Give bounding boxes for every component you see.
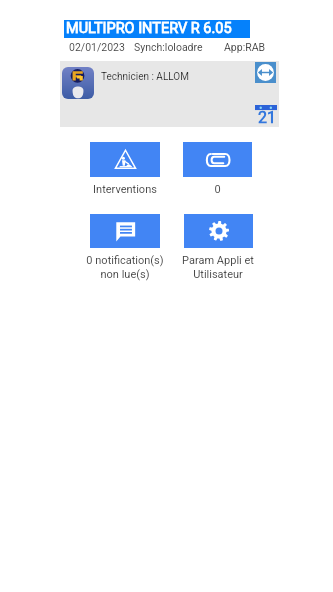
button[interactable]: 0 notification(s) non lue(s)	[86, 214, 164, 280]
staticText: Synch:loloadre	[134, 41, 203, 53]
staticText: 02/01/2023	[69, 41, 125, 53]
staticText: Interventions	[93, 183, 157, 196]
button[interactable]: Calendar	[255, 105, 277, 127]
staticText: App:RAB	[224, 41, 266, 53]
staticText: MULTIPRO INTERV R 6.05	[66, 20, 232, 37]
button[interactable]: TeamViewer	[255, 62, 276, 83]
button[interactable]: Interventions	[90, 142, 160, 196]
staticText: 0	[214, 183, 221, 196]
staticText: Param Appli et Utilisateur	[182, 254, 254, 280]
staticText: 0 notification(s) non lue(s)	[86, 254, 164, 280]
button[interactable]: 0	[183, 142, 252, 196]
button[interactable]: Technicien : ALLOM	[60, 67, 240, 99]
staticText: Technicien : ALLOM	[101, 71, 189, 83]
staticText: 21	[258, 108, 276, 127]
button[interactable]: Param Appli et Utilisateur	[182, 214, 254, 280]
